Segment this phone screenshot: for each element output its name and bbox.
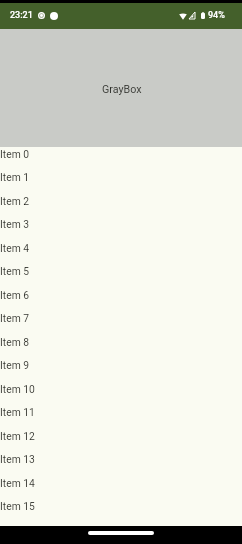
staticText: Item 0 (0, 148, 30, 160)
button[interactable]: Item 5 (0, 264, 242, 288)
staticText: Item 13 (0, 453, 35, 465)
staticText: Item 14 (0, 477, 35, 489)
button[interactable]: Item 10 (0, 382, 242, 405)
button[interactable]: Item 7 (0, 311, 242, 335)
button[interactable]: Item 6 (0, 288, 242, 311)
staticText: Item 2 (0, 195, 30, 207)
other: Wi-Fi (179, 12, 187, 20)
staticText: Item 9 (0, 359, 30, 371)
staticText: Item 11 (0, 406, 35, 418)
button[interactable]: Item 14 (0, 476, 242, 499)
button[interactable]: Item 4 (0, 241, 242, 264)
other: Notification (50, 12, 58, 20)
staticText: Item 15 (0, 500, 35, 512)
button[interactable]: Item 1 (0, 170, 242, 194)
button[interactable]: Item 8 (0, 335, 242, 358)
button[interactable]: Item 11 (0, 405, 242, 429)
staticText: Item 12 (0, 430, 35, 442)
button[interactable]: Item 13 (0, 452, 242, 476)
staticText: Item 6 (0, 289, 30, 301)
staticText: GrayBox (102, 83, 142, 96)
staticText: Item 1 (0, 171, 30, 183)
staticText: 23:21 (10, 10, 33, 21)
staticText: Item 10 (0, 383, 35, 395)
button[interactable]: Item 3 (0, 217, 242, 241)
other: Battery 94 percent (201, 12, 205, 19)
staticText: Item 8 (0, 336, 30, 348)
button[interactable]: Item 0 (0, 147, 242, 170)
staticText: Item 5 (0, 265, 30, 277)
other: Mobile signal (189, 12, 195, 19)
button[interactable]: Item 15 (0, 499, 242, 523)
staticText: Item 4 (0, 242, 30, 254)
staticText: Item 3 (0, 218, 30, 230)
button[interactable]: Item 2 (0, 194, 242, 217)
staticText: 94% (208, 10, 225, 21)
other: Notification (38, 12, 45, 19)
button[interactable]: Item 12 (0, 429, 242, 452)
button[interactable]: Item 9 (0, 358, 242, 382)
staticText: Item 7 (0, 312, 30, 324)
